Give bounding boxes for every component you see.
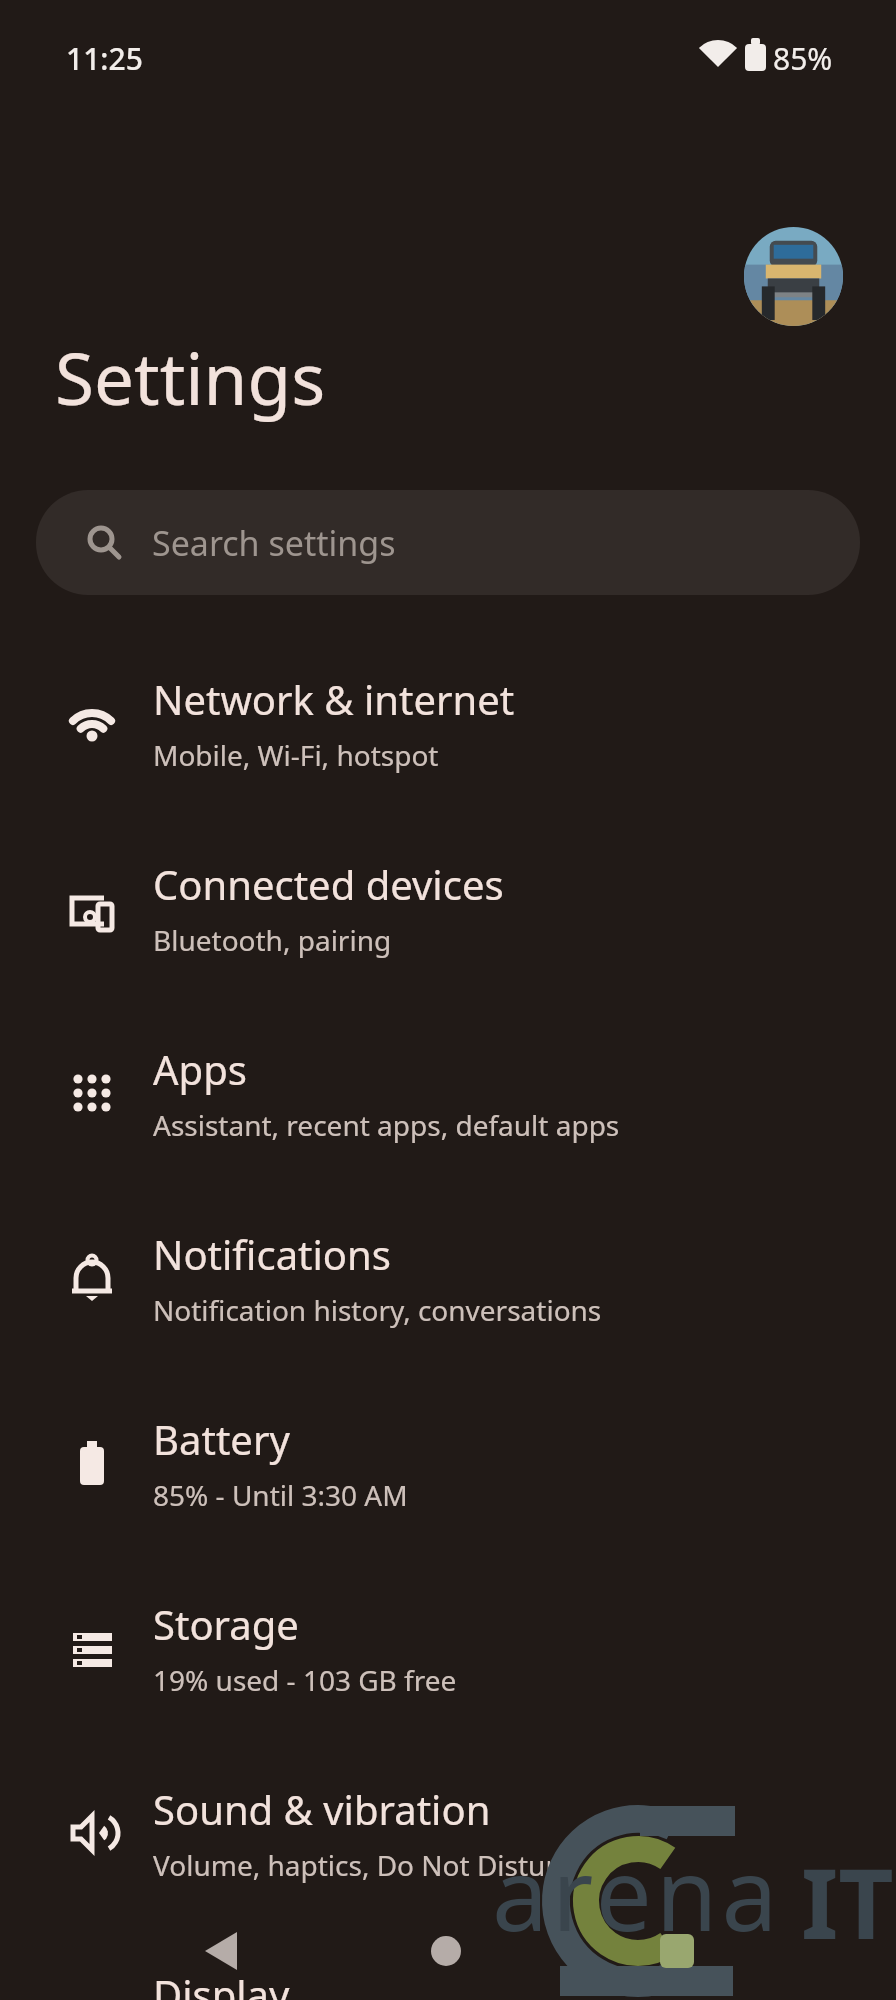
staticText: 85% - Until 3:30 AM <box>153 1476 408 1514</box>
staticText: Connected devices <box>153 857 504 911</box>
staticText: Storage <box>153 1597 299 1651</box>
staticText: 19% used - 103 GB free <box>153 1661 457 1699</box>
staticText: Sound & vibration <box>153 1782 491 1836</box>
staticText: Notification history, conversations <box>153 1291 602 1329</box>
button[interactable]: Storage <box>0 1557 896 1739</box>
staticText: 11:25 <box>66 38 143 79</box>
staticText: Notifications <box>153 1227 391 1281</box>
staticText: Network & internet <box>153 672 515 726</box>
button[interactable] <box>744 227 843 326</box>
staticText: IT <box>801 1836 894 1967</box>
staticText: 85% <box>773 38 833 79</box>
staticText: Battery <box>153 1412 290 1466</box>
staticText: Volume, haptics, Do Not Disturb <box>153 1846 575 1884</box>
button[interactable]: Connected devices <box>0 817 896 999</box>
staticText: Settings <box>55 329 326 426</box>
button[interactable]: Network & internet <box>0 632 896 814</box>
button[interactable]: Search settings <box>36 490 860 595</box>
staticText: Search settings <box>152 520 396 566</box>
staticText: Mobile, Wi-Fi, hotspot <box>153 736 439 774</box>
button[interactable]: Notifications <box>0 1187 896 1369</box>
staticText: Assistant, recent apps, default apps <box>153 1106 620 1144</box>
button[interactable]: Battery <box>0 1372 896 1554</box>
button[interactable]: Apps <box>0 1002 896 1184</box>
staticText: arena <box>492 1824 782 1960</box>
staticText: Bluetooth, pairing <box>153 921 392 959</box>
button[interactable]: Display <box>0 1927 896 2000</box>
button[interactable]: Sound & vibration <box>0 1742 896 1924</box>
staticText: Apps <box>153 1042 247 1096</box>
staticText: Display <box>153 1967 290 2000</box>
